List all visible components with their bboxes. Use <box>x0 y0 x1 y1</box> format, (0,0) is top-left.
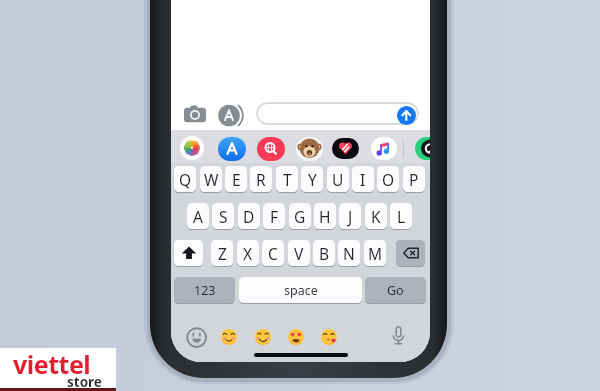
staticText: B <box>319 243 330 264</box>
button[interactable]: F <box>263 203 285 229</box>
button[interactable]: Z <box>211 240 233 266</box>
button[interactable] <box>396 240 425 266</box>
button[interactable]: P <box>403 166 425 192</box>
staticText: W <box>204 169 219 190</box>
staticText: E <box>232 169 241 190</box>
button[interactable] <box>218 137 246 161</box>
button[interactable]: U <box>327 166 349 192</box>
button[interactable]: K <box>365 203 387 229</box>
button[interactable]: D <box>238 203 260 229</box>
button[interactable] <box>391 326 406 347</box>
button[interactable]: Go <box>365 277 426 303</box>
button[interactable]: I <box>352 166 374 192</box>
button[interactable] <box>186 327 207 348</box>
button[interactable]: H <box>314 203 336 229</box>
button[interactable] <box>332 138 359 159</box>
staticText: Q <box>179 169 192 190</box>
staticText: store <box>67 373 102 391</box>
button[interactable]: N <box>338 240 360 266</box>
button[interactable]: Q <box>174 166 196 192</box>
staticText: V <box>294 243 304 264</box>
staticText: F <box>270 206 279 227</box>
button[interactable] <box>415 137 430 160</box>
button[interactable] <box>218 104 243 127</box>
staticText: L <box>397 206 406 227</box>
button[interactable]: S <box>212 203 234 229</box>
button[interactable]: R <box>250 166 272 192</box>
staticText: U <box>332 169 344 190</box>
staticText: 123 <box>194 282 216 299</box>
button[interactable]: W <box>200 166 222 192</box>
staticText: R <box>256 169 266 190</box>
button[interactable] <box>296 137 323 161</box>
staticText: viettel <box>13 347 91 381</box>
button[interactable] <box>288 329 304 345</box>
button[interactable] <box>321 329 337 345</box>
button[interactable] <box>174 240 203 266</box>
staticText: D <box>243 206 255 227</box>
button[interactable]: X <box>237 240 259 266</box>
button[interactable] <box>184 105 206 123</box>
button[interactable]: T <box>276 166 298 192</box>
button[interactable]: V <box>288 240 310 266</box>
button[interactable] <box>371 137 397 160</box>
button[interactable]: M <box>364 240 386 266</box>
staticText: Y <box>308 169 317 190</box>
button[interactable]: B <box>313 240 335 266</box>
button[interactable]: 123 <box>174 277 235 303</box>
staticText: M <box>368 243 383 264</box>
button[interactable]: Y <box>301 166 323 192</box>
button[interactable]: J <box>339 203 361 229</box>
button[interactable]: O <box>377 166 399 192</box>
staticText: T <box>283 169 292 190</box>
staticText: N <box>343 243 355 264</box>
button[interactable] <box>180 136 204 160</box>
staticText: Go <box>387 282 404 299</box>
staticText: H <box>319 206 331 227</box>
staticText: Z <box>218 243 227 264</box>
button[interactable]: space <box>239 277 362 303</box>
button[interactable]: E <box>225 166 247 192</box>
staticText: P <box>409 169 419 190</box>
staticText: S <box>219 206 228 227</box>
staticText: A <box>193 206 203 227</box>
button[interactable] <box>257 137 285 161</box>
staticText: G <box>294 206 306 227</box>
button[interactable] <box>255 329 271 345</box>
staticText: J <box>348 206 353 227</box>
staticText: space <box>284 282 318 299</box>
staticText: I <box>360 169 366 190</box>
staticText: C <box>268 243 278 264</box>
staticText: X <box>243 243 253 264</box>
button[interactable]: G <box>289 203 311 229</box>
button[interactable] <box>397 106 416 125</box>
staticText: O <box>382 169 395 190</box>
staticText: K <box>371 206 381 227</box>
button[interactable]: L <box>390 203 412 229</box>
button[interactable] <box>221 329 237 345</box>
button[interactable]: C <box>262 240 284 266</box>
button[interactable]: A <box>187 203 209 229</box>
button[interactable] <box>256 102 419 125</box>
